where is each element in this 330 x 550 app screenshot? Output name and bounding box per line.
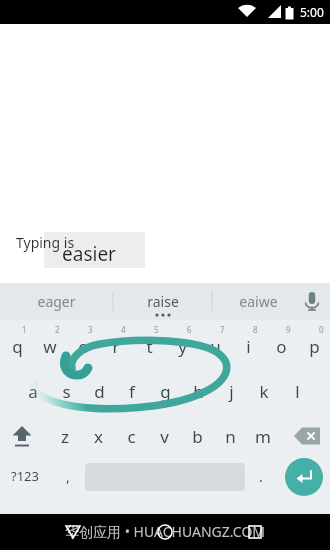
button[interactable]: j xyxy=(214,375,248,407)
button[interactable]: h xyxy=(181,375,215,407)
button[interactable]: Shift xyxy=(2,420,42,454)
staticText: 8 xyxy=(253,324,258,335)
staticText: t xyxy=(146,335,153,358)
button[interactable]: x xyxy=(81,420,115,452)
button[interactable]: u xyxy=(198,330,232,362)
staticText: h xyxy=(193,380,204,403)
staticText: w xyxy=(43,335,57,358)
staticText: c xyxy=(127,425,136,448)
staticText: 5:00 xyxy=(300,4,324,20)
button[interactable]: ?123 xyxy=(2,460,48,492)
staticText: 6 xyxy=(187,324,192,335)
button[interactable]: k xyxy=(247,375,281,407)
staticText: s xyxy=(62,380,71,403)
button[interactable]: r xyxy=(99,330,133,362)
button[interactable]: Voice input xyxy=(294,283,330,320)
staticText: n xyxy=(225,425,236,448)
staticText: 3 xyxy=(88,324,93,335)
staticText: 2 xyxy=(55,324,60,335)
staticText: m xyxy=(255,425,271,448)
button[interactable]: Enter xyxy=(285,458,323,496)
button[interactable]: c xyxy=(114,420,148,452)
button[interactable]: i xyxy=(231,330,265,362)
staticText: raise xyxy=(147,292,179,311)
staticText: l xyxy=(295,380,300,403)
button[interactable]: d xyxy=(82,375,116,407)
button[interactable]: p xyxy=(297,330,330,362)
button[interactable]: l xyxy=(280,375,314,407)
button[interactable]: eager xyxy=(14,283,98,320)
button[interactable]: . xyxy=(248,460,274,492)
button[interactable]: t xyxy=(132,330,166,362)
button[interactable]: z xyxy=(48,420,82,452)
button[interactable]: f xyxy=(115,375,149,407)
button[interactable]: s xyxy=(49,375,83,407)
staticText: d xyxy=(94,380,105,403)
staticText: easier xyxy=(62,241,116,267)
staticText: q xyxy=(12,335,23,358)
staticText: p xyxy=(309,335,320,358)
button[interactable]: b xyxy=(180,420,214,452)
button[interactable]: raise xyxy=(121,283,205,320)
staticText: x xyxy=(94,425,103,448)
button[interactable]: y xyxy=(165,330,199,362)
staticText: 9 xyxy=(286,324,291,335)
staticText: b xyxy=(192,425,203,448)
staticText: , xyxy=(66,467,70,486)
button[interactable]: o xyxy=(264,330,298,362)
button[interactable]: w xyxy=(33,330,67,362)
button[interactable]: e xyxy=(66,330,100,362)
other: Navigation bar xyxy=(0,514,330,550)
button[interactable]: v xyxy=(147,420,181,452)
staticText: k xyxy=(259,380,269,403)
staticText: u xyxy=(210,335,221,358)
button[interactable]: n xyxy=(213,420,247,452)
button[interactable]: q xyxy=(0,330,34,362)
button[interactable]: , xyxy=(54,460,82,492)
staticText: 华创应用 • HUACHUANGZ.COM xyxy=(65,522,266,541)
staticText: r xyxy=(112,335,120,358)
staticText: e xyxy=(78,335,88,358)
staticText: 1 xyxy=(22,324,27,335)
staticText: . xyxy=(259,467,263,486)
staticText: 4 xyxy=(121,324,126,335)
staticText: y xyxy=(178,335,187,358)
staticText: Typing is xyxy=(16,233,75,252)
staticText: a xyxy=(28,380,38,403)
button[interactable]: eaiwe xyxy=(216,283,300,320)
staticText: 0 xyxy=(319,324,324,335)
staticText: j xyxy=(229,380,234,403)
button[interactable]: m xyxy=(246,420,280,452)
staticText: eaiwe xyxy=(239,292,278,311)
staticText: i xyxy=(246,335,251,358)
staticText: z xyxy=(61,425,69,448)
staticText: eager xyxy=(37,292,76,311)
staticText: o xyxy=(276,335,287,358)
staticText: 7 xyxy=(220,324,225,335)
button[interactable]: Backspace xyxy=(288,421,326,451)
staticText: f xyxy=(129,380,135,403)
staticText: v xyxy=(160,425,169,448)
button[interactable]: g xyxy=(148,375,182,407)
button[interactable]: a xyxy=(16,375,50,407)
staticText: ?123 xyxy=(11,467,39,485)
staticText: 5 xyxy=(154,324,159,335)
staticText: g xyxy=(160,380,171,403)
